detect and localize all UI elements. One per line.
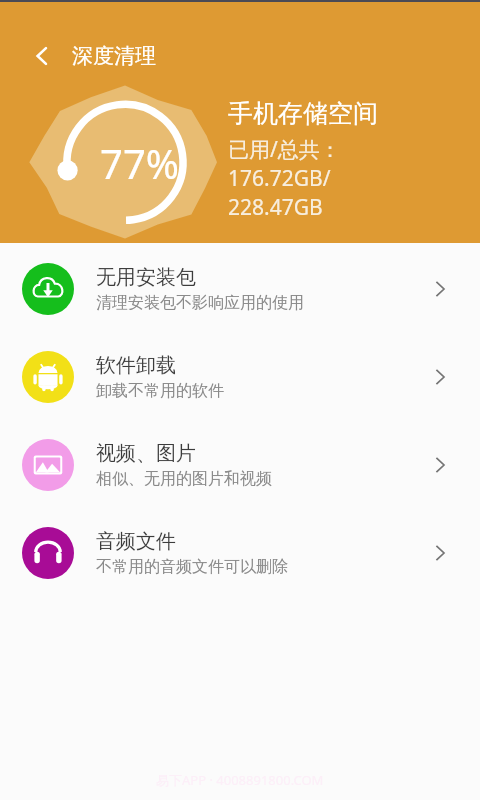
staticText: 228.47GB — [228, 193, 323, 222]
staticText: 已用/总共： — [228, 135, 341, 164]
staticText: 相似、无用的图片和视频 — [96, 469, 272, 489]
staticText: 卸载不常用的软件 — [96, 381, 224, 401]
staticText: 77% — [100, 136, 179, 190]
staticText: 深度清理 — [72, 43, 156, 69]
staticText: 软件卸载 — [96, 353, 176, 378]
button[interactable]: 音频文件 — [0, 509, 480, 597]
staticText: 不常用的音频文件可以删除 — [96, 557, 288, 577]
staticText: 音频文件 — [96, 529, 176, 554]
staticText: 易下APP · 4008891800.COM — [156, 771, 324, 789]
staticText: 清理安装包不影响应用的使用 — [96, 293, 304, 313]
staticText: 无用安装包 — [96, 265, 196, 290]
staticText: 视频、图片 — [96, 441, 196, 466]
staticText: 手机存储空间 — [228, 98, 378, 129]
button[interactable]: 软件卸载 — [0, 333, 480, 421]
button[interactable]: 无用安装包 — [0, 245, 480, 333]
button[interactable]: Back — [22, 36, 62, 76]
staticText: 176.72GB/ — [228, 164, 331, 193]
button[interactable]: 视频、图片 — [0, 421, 480, 509]
